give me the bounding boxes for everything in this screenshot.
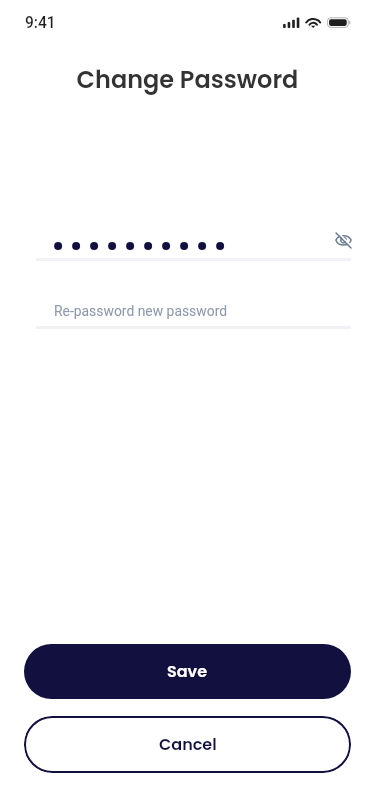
button[interactable]: Save xyxy=(24,644,351,699)
staticText: 9:41 xyxy=(25,14,56,32)
button[interactable]: Show password xyxy=(329,226,357,254)
button[interactable]: Cancel xyxy=(24,716,351,773)
staticText: Cancel xyxy=(159,733,217,755)
staticText: Change Password xyxy=(0,63,375,97)
staticText: Re-password new password xyxy=(54,303,228,319)
button[interactable]: Re-password new password xyxy=(36,293,351,327)
staticText: Save xyxy=(167,660,208,682)
button[interactable] xyxy=(36,222,316,259)
